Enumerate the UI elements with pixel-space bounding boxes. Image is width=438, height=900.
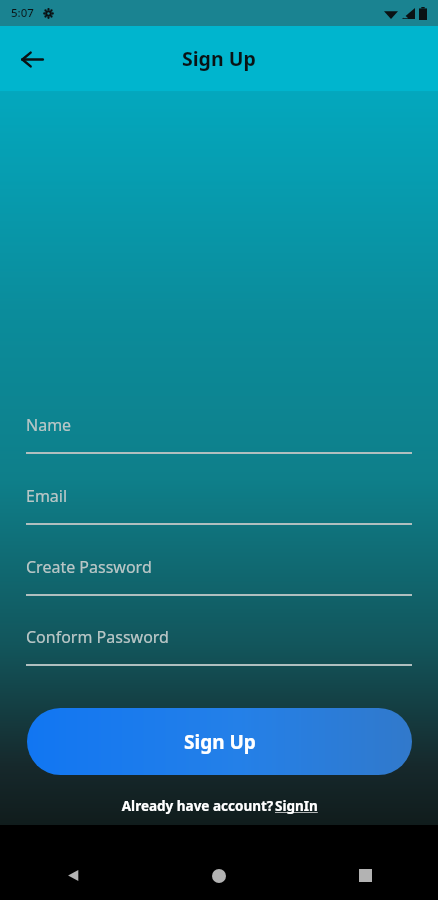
staticText: Already have account? <box>120 797 275 815</box>
staticText: SignIn <box>275 797 318 815</box>
staticText: Name <box>26 414 72 436</box>
staticText: Create Password <box>26 556 152 578</box>
staticText: Conform Password <box>26 626 169 648</box>
button[interactable]: Recent apps <box>292 851 438 900</box>
button[interactable]: Create Password <box>26 554 412 596</box>
button[interactable]: Conform Password <box>26 624 412 666</box>
button[interactable]: SignIn <box>275 797 318 815</box>
staticText: Sign Up <box>182 45 256 72</box>
button[interactable]: Home <box>146 851 292 900</box>
button[interactable]: Back <box>0 851 146 900</box>
staticText: Sign Up <box>184 729 256 755</box>
button[interactable]: Email <box>26 483 412 525</box>
staticText: 5:07 <box>11 5 34 21</box>
staticText: Email <box>26 485 68 507</box>
button[interactable]: Back <box>11 38 53 80</box>
button[interactable]: Name <box>26 412 412 454</box>
button[interactable]: Sign Up <box>27 708 412 775</box>
